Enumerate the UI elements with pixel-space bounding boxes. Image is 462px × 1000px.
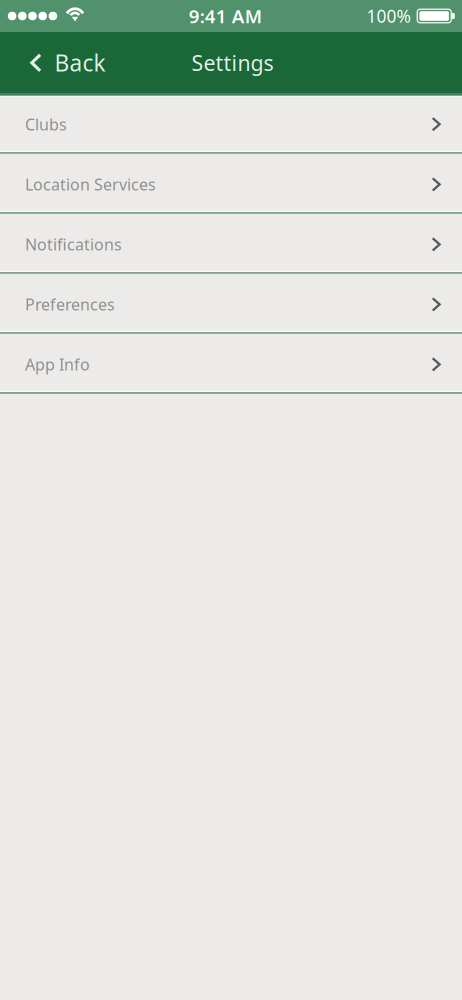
button[interactable]: Clubs	[0, 97, 462, 154]
staticText: Clubs	[25, 114, 67, 135]
staticText: 9:41 AM	[189, 4, 262, 28]
button[interactable]: Location Services	[0, 154, 462, 214]
button[interactable]: Preferences	[0, 274, 462, 334]
staticText: 100%	[366, 4, 410, 27]
button[interactable]: Notifications	[0, 214, 462, 274]
button[interactable]: App Info	[0, 334, 462, 394]
staticText: Location Services	[25, 174, 156, 195]
staticText: App Info	[25, 354, 90, 375]
button[interactable]: Back	[0, 32, 119, 94]
staticText: Notifications	[25, 234, 122, 255]
staticText: Settings	[191, 49, 273, 77]
staticText: Preferences	[25, 294, 115, 315]
staticText: Back	[54, 48, 105, 78]
